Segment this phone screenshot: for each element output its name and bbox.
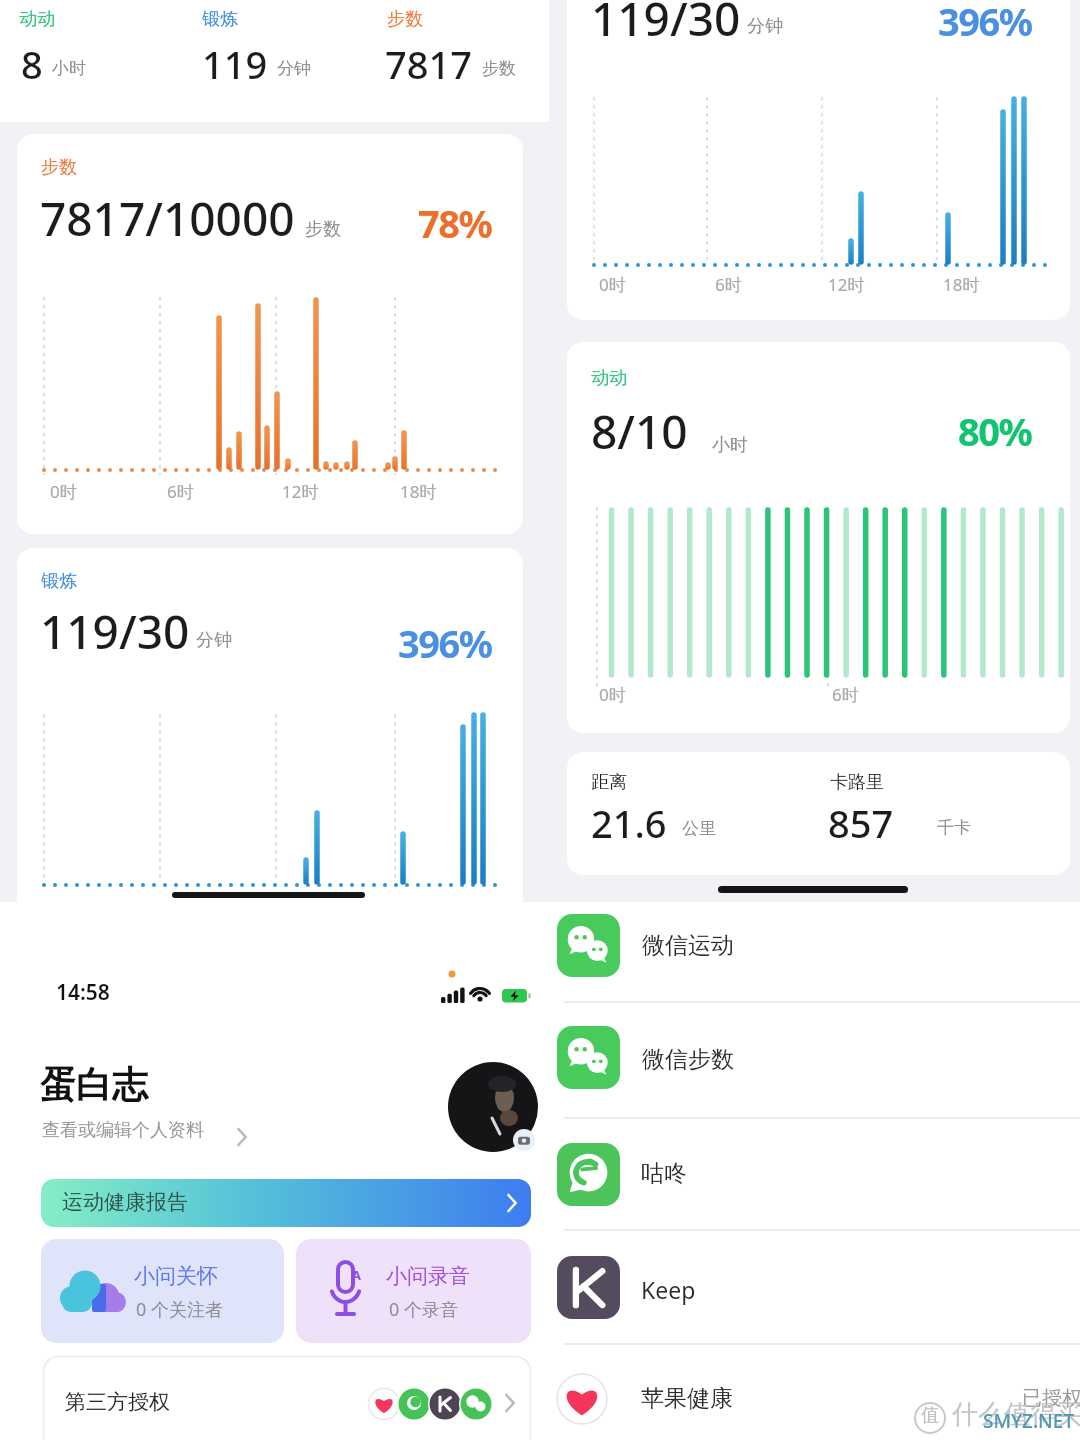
staticText: 咕咚 bbox=[641, 1159, 687, 1188]
staticText: 查看或编辑个人资料 bbox=[42, 1119, 204, 1142]
staticText: 14:58 bbox=[56, 978, 110, 1007]
staticText: SMYZ.NET bbox=[983, 1408, 1075, 1434]
staticText: 步数 bbox=[482, 58, 516, 79]
staticText: 小问录音 bbox=[386, 1263, 470, 1289]
staticText: 卡路里 bbox=[830, 771, 884, 794]
staticText: 119/30 bbox=[591, 0, 741, 50]
button[interactable] bbox=[557, 1256, 620, 1319]
staticText: 8/10 bbox=[591, 400, 688, 463]
staticText: 7817/10000 bbox=[40, 187, 295, 250]
staticText: 分钟 bbox=[747, 15, 783, 38]
staticText: 12时 bbox=[282, 480, 319, 503]
staticText: 千卡 bbox=[937, 817, 971, 838]
staticText: 什么值得买 bbox=[952, 1398, 1080, 1431]
button[interactable] bbox=[557, 1374, 607, 1424]
staticText: 8 bbox=[21, 38, 43, 90]
staticText: Keep bbox=[641, 1274, 696, 1305]
staticText: 0 个关注者 bbox=[136, 1297, 223, 1322]
staticText: A bbox=[352, 1266, 361, 1284]
staticText: 距离 bbox=[591, 771, 627, 794]
staticText: 0时 bbox=[50, 480, 77, 503]
button[interactable] bbox=[567, 0, 1070, 320]
staticText: 蛋白志 bbox=[40, 1062, 148, 1107]
staticText: 78% bbox=[418, 197, 492, 249]
staticText: 6时 bbox=[167, 480, 194, 503]
staticText: 0 个录音 bbox=[389, 1297, 458, 1322]
staticText: 锻炼 bbox=[202, 8, 238, 31]
staticText: 小时 bbox=[712, 434, 748, 457]
button[interactable] bbox=[17, 548, 523, 902]
staticText: 苹果健康 bbox=[641, 1384, 733, 1413]
button[interactable] bbox=[17, 134, 523, 534]
staticText: 步数 bbox=[41, 156, 77, 179]
button[interactable] bbox=[448, 1062, 538, 1152]
staticText: 动动 bbox=[591, 367, 627, 390]
staticText: 18时 bbox=[943, 273, 980, 296]
staticText: 80% bbox=[958, 405, 1032, 457]
staticText: 分钟 bbox=[196, 629, 232, 652]
staticText: 7817 bbox=[385, 38, 472, 90]
staticText: 动动 bbox=[19, 8, 55, 31]
staticText: 分钟 bbox=[277, 58, 311, 79]
staticText: 6时 bbox=[832, 683, 859, 706]
staticText: 值 bbox=[921, 1404, 939, 1427]
staticText: 396% bbox=[398, 617, 492, 669]
staticText: 6时 bbox=[715, 273, 742, 296]
staticText: 857 bbox=[828, 797, 894, 849]
staticText: 396% bbox=[938, 0, 1032, 47]
staticText: 0时 bbox=[599, 683, 626, 706]
staticText: 0时 bbox=[599, 273, 626, 296]
staticText: 锻炼 bbox=[41, 570, 77, 593]
button[interactable] bbox=[567, 752, 1070, 875]
button[interactable] bbox=[43, 1356, 531, 1440]
button[interactable] bbox=[567, 342, 1070, 733]
button[interactable] bbox=[41, 1179, 531, 1227]
staticText: 公里 bbox=[682, 818, 716, 839]
staticText: 微信步数 bbox=[642, 1045, 734, 1074]
staticText: 21.6 bbox=[591, 797, 667, 849]
button[interactable] bbox=[296, 1239, 531, 1343]
staticText: 已授权 bbox=[1022, 1386, 1080, 1411]
staticText: 119/30 bbox=[40, 600, 190, 663]
staticText: 步数 bbox=[305, 218, 341, 241]
staticText: 小时 bbox=[52, 58, 86, 79]
staticText: 微信运动 bbox=[642, 931, 734, 960]
button[interactable] bbox=[41, 1239, 284, 1343]
button[interactable] bbox=[557, 1026, 620, 1089]
staticText: 小问关怀 bbox=[134, 1263, 218, 1289]
staticText: 119 bbox=[202, 38, 268, 90]
button[interactable] bbox=[557, 1143, 620, 1206]
staticText: 12时 bbox=[828, 273, 865, 296]
staticText: 18时 bbox=[400, 480, 437, 503]
staticText: 步数 bbox=[387, 8, 423, 31]
staticText: 运动健康报告 bbox=[62, 1189, 188, 1215]
button[interactable] bbox=[557, 914, 620, 977]
staticText: 第三方授权 bbox=[65, 1389, 170, 1415]
